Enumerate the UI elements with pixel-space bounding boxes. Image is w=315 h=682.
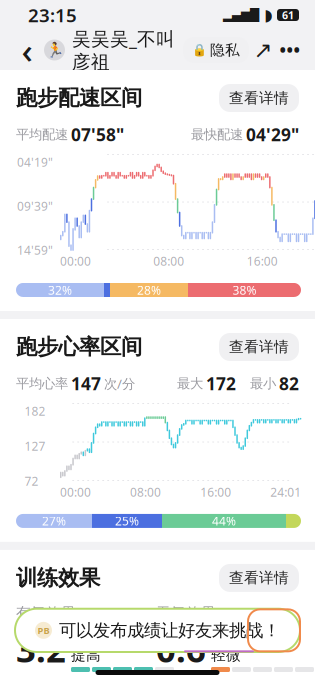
- button[interactable]: 更多: [277, 35, 303, 65]
- staticText: 72: [24, 473, 38, 489]
- staticText: 可以发布成绩让好友来挑战！: [59, 620, 280, 641]
- staticText: 🔒: [192, 43, 207, 57]
- staticText: 08:00: [153, 253, 184, 269]
- staticText: 08:00: [130, 484, 161, 500]
- staticText: 查看详情: [229, 89, 289, 107]
- staticText: 07'58": [71, 123, 124, 146]
- staticText: 最快配速: [191, 126, 243, 143]
- staticText: 182: [24, 403, 45, 419]
- staticText: 23:15: [28, 3, 77, 27]
- staticText: 查看详情: [229, 338, 289, 356]
- staticText: 3.2: [16, 626, 66, 672]
- staticText: 04'29": [246, 123, 299, 146]
- staticText: ▂▄▆█: [223, 8, 259, 22]
- staticText: 61: [282, 8, 294, 22]
- button[interactable]: 查看详情: [219, 564, 299, 592]
- staticText: 最大: [177, 375, 203, 392]
- staticText: 🏃: [45, 42, 63, 58]
- staticText: 00:00: [60, 484, 91, 500]
- button[interactable]: 🔒: [183, 37, 249, 63]
- staticText: 轻微: [211, 646, 241, 664]
- staticText: 隐私: [210, 41, 240, 59]
- staticText: 跑步配速区间: [16, 85, 142, 111]
- staticText: 00:00: [60, 253, 91, 269]
- staticText: 吴吴吴_不叫彦祖: [72, 26, 175, 74]
- staticText: 82: [279, 372, 299, 395]
- staticText: 14'59": [17, 242, 53, 258]
- staticText: 查看详情: [229, 569, 289, 587]
- staticText: 25%: [115, 513, 139, 529]
- staticText: PB: [37, 624, 49, 637]
- staticText: ◗: [264, 6, 272, 24]
- staticText: 提高: [71, 646, 101, 664]
- staticText: 32%: [48, 282, 72, 298]
- staticText: 24:01: [270, 484, 301, 500]
- staticText: 无氧效果: [156, 604, 216, 622]
- button[interactable]: 分享: [249, 35, 277, 65]
- staticText: 0.6: [156, 626, 206, 672]
- staticText: 172: [206, 372, 236, 395]
- staticText: 09'39": [17, 198, 53, 214]
- staticText: 28%: [137, 282, 161, 298]
- staticText: 训练效果: [16, 565, 100, 591]
- staticText: 16:00: [247, 253, 278, 269]
- staticText: 平均心率: [16, 375, 68, 392]
- staticText: 平均配速: [16, 126, 68, 143]
- staticText: 38%: [232, 282, 256, 298]
- button[interactable]: 查看详情: [219, 333, 299, 361]
- button[interactable]: 返回: [12, 33, 42, 67]
- staticText: ‹: [21, 27, 32, 73]
- staticText: 最小: [250, 375, 276, 392]
- staticText: 次/分: [104, 375, 135, 392]
- staticText: 04'19": [17, 154, 53, 170]
- button[interactable]: 查看详情: [219, 84, 299, 112]
- staticText: •••: [279, 38, 300, 61]
- staticText: 127: [24, 438, 45, 454]
- button[interactable]: PB: [15, 609, 300, 652]
- staticText: 147: [71, 372, 101, 395]
- staticText: 16:00: [200, 484, 231, 500]
- staticText: 44%: [212, 513, 236, 529]
- staticText: 27%: [42, 513, 66, 529]
- staticText: ↗: [253, 37, 272, 63]
- staticText: 有氧效果: [16, 604, 76, 622]
- staticText: 跑步心率区间: [16, 334, 142, 360]
